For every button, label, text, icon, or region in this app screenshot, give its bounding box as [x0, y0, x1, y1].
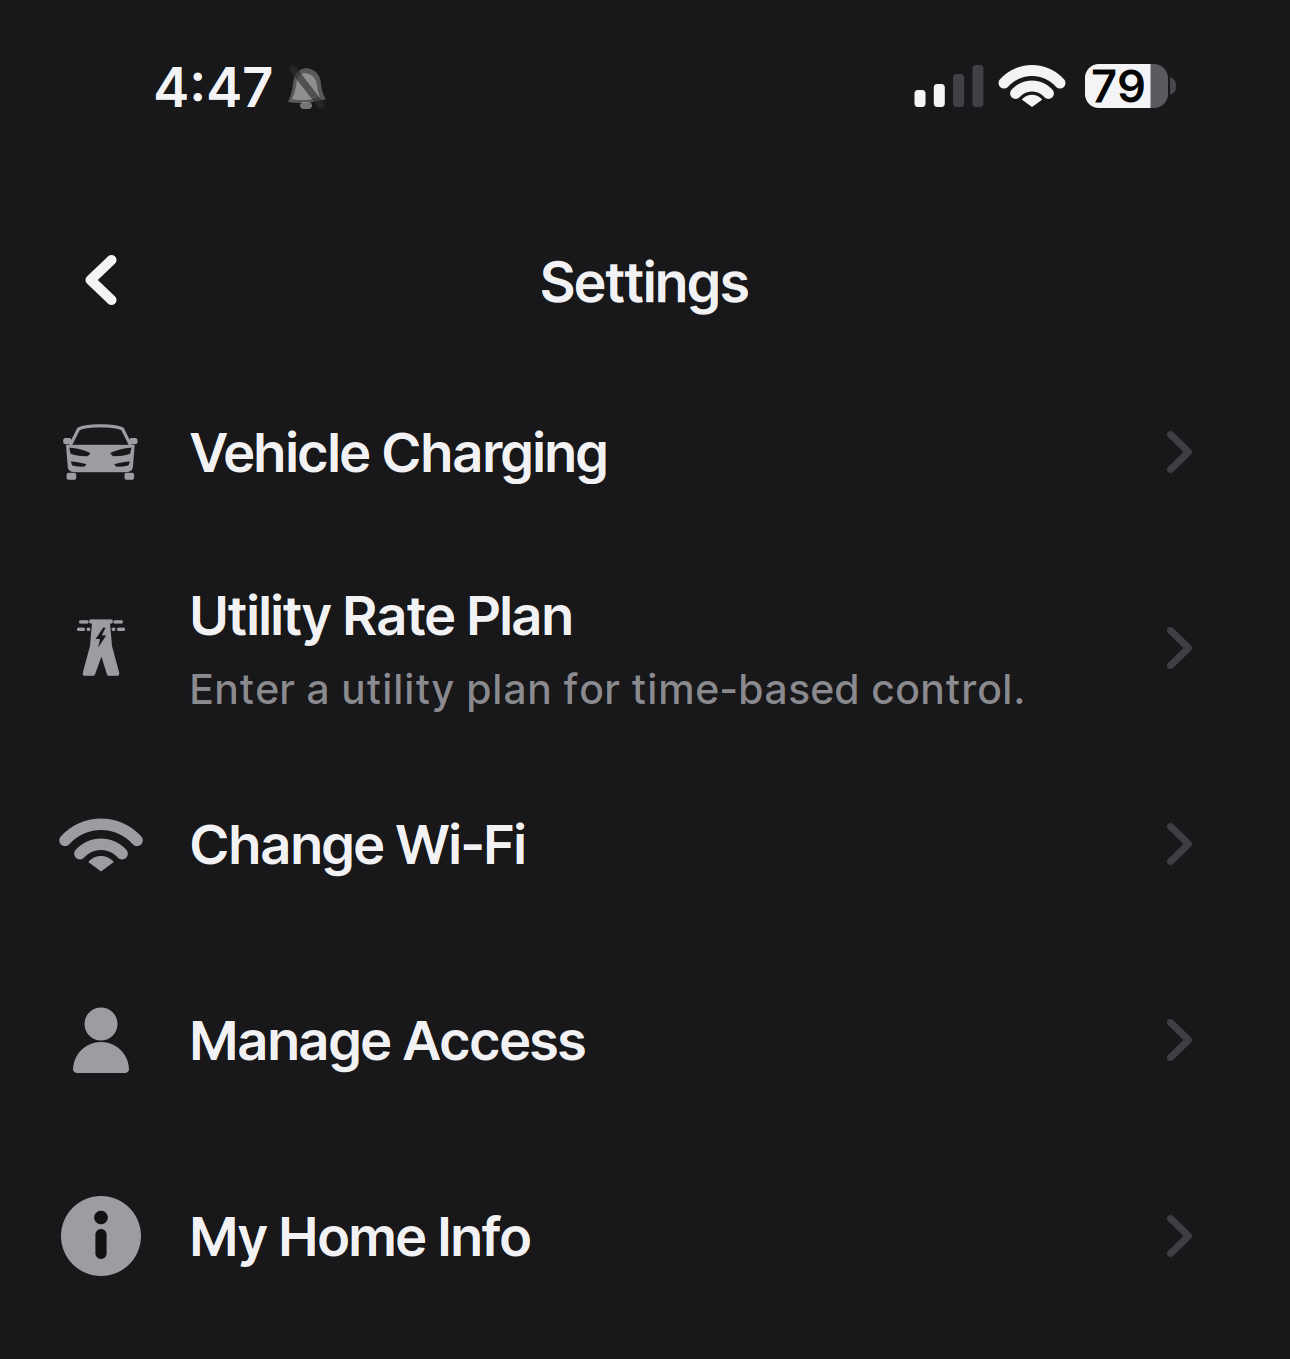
staticText: My Home Info [190, 1203, 531, 1269]
staticText: Change Wi-Fi [190, 811, 526, 877]
staticText: Settings [540, 248, 749, 316]
button[interactable]: Manage Access [0, 942, 1290, 1138]
staticText: Vehicle Charging [190, 419, 608, 485]
button[interactable]: Vehicle Charging [0, 354, 1290, 550]
button[interactable]: Back [63, 233, 138, 327]
staticText: E n t e r a u t i l i t y p l a n f o r … [190, 664, 1025, 714]
button[interactable]: Utility Rate Plan [0, 550, 1290, 746]
button[interactable]: Change Wi-Fi [0, 746, 1290, 942]
staticText: Manage Access [190, 1007, 586, 1073]
staticText: 4:47 [153, 54, 273, 120]
button[interactable]: My Home Info [0, 1138, 1290, 1334]
staticText: 79 [1091, 59, 1146, 113]
staticText: Utility Rate Plan [190, 582, 573, 648]
